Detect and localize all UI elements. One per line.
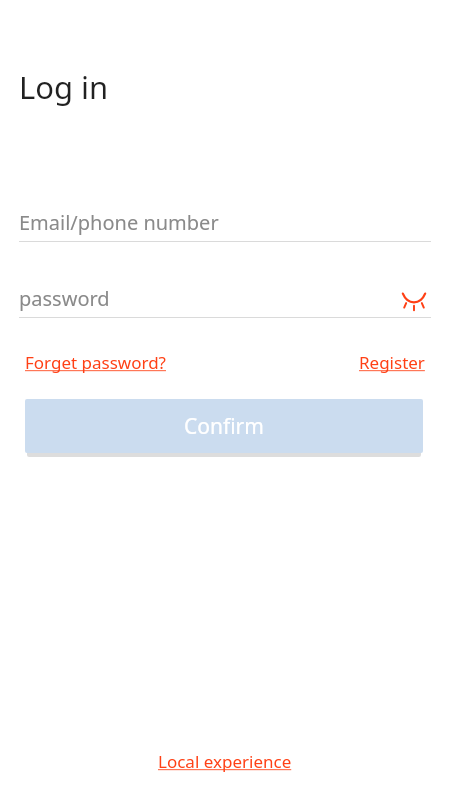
button[interactable]: Register [359, 351, 425, 374]
button[interactable]: Confirm [25, 399, 423, 453]
staticText: Email/phone number [19, 209, 219, 236]
button[interactable]: Email/phone number [19, 203, 431, 241]
button[interactable]: Show password [397, 281, 431, 315]
staticText: Register [359, 351, 425, 374]
staticText: Forget password? [25, 351, 166, 374]
staticText: Log in [19, 66, 109, 108]
button[interactable]: password [19, 285, 397, 312]
button[interactable]: Local experience [158, 750, 292, 773]
staticText: Local experience [158, 750, 292, 773]
staticText: password [19, 285, 110, 312]
button[interactable]: Forget password? [25, 351, 166, 374]
staticText: Confirm [184, 412, 264, 441]
